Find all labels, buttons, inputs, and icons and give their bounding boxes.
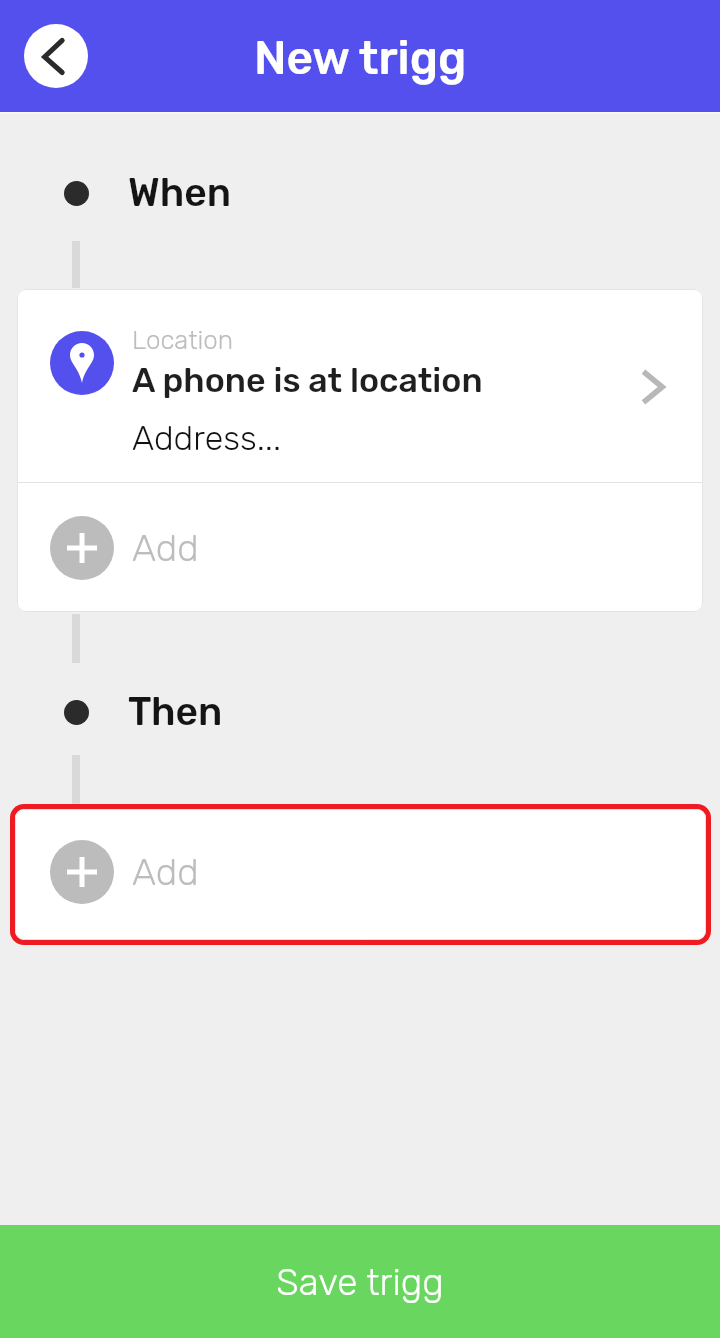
staticText: New trigg (254, 31, 467, 86)
staticText: Add (132, 850, 199, 894)
button[interactable]: Add (17, 483, 703, 612)
staticText: A phone is at location (132, 360, 483, 400)
staticText: Location (132, 325, 234, 356)
staticText: When (128, 170, 232, 216)
staticText: Address... (132, 418, 282, 458)
button[interactable]: Location (17, 289, 703, 482)
staticText: Save trigg (276, 1260, 444, 1304)
button[interactable]: Save trigg (0, 1225, 720, 1338)
staticText: Add (132, 526, 199, 570)
button[interactable]: Add (17, 809, 706, 937)
staticText: Then (128, 689, 223, 735)
button[interactable]: Back (24, 24, 88, 88)
